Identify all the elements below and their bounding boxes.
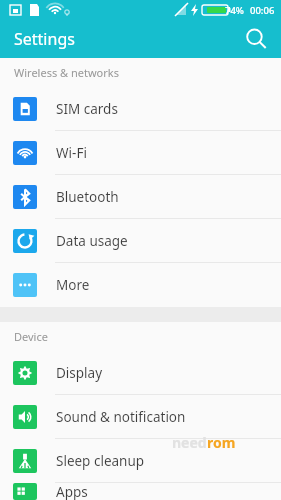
staticText: Sound & notification [56,408,186,426]
button[interactable]: Display [0,351,281,395]
button[interactable]: Data usage [0,219,281,263]
staticText: Settings [14,28,75,50]
staticText: Sleep cleanup [56,452,145,470]
button[interactable]: More [0,263,281,307]
staticText: More [56,276,90,294]
button[interactable]: Wi-Fi [0,131,281,175]
staticText: Apps [56,483,88,500]
staticText: Device [14,329,48,344]
staticText: SIM cards [56,100,118,118]
staticText: Display [56,364,103,382]
staticText: need [172,433,207,452]
staticText: Wi-Fi [56,144,87,162]
staticText: Wireless & networks [14,65,119,80]
staticText: Bluetooth [56,188,119,206]
button[interactable]: Apps [0,483,281,500]
button[interactable]: Sleep cleanup [0,439,281,483]
button[interactable]: Bluetooth [0,175,281,219]
button[interactable]: SIM cards [0,87,281,131]
staticText: Data usage [56,232,128,250]
staticText: 00:06 [250,4,275,17]
button[interactable]: Search [239,22,273,56]
staticText: rom [207,433,236,452]
button[interactable]: Sound & notification [0,395,281,439]
staticText: 74% [225,4,244,17]
